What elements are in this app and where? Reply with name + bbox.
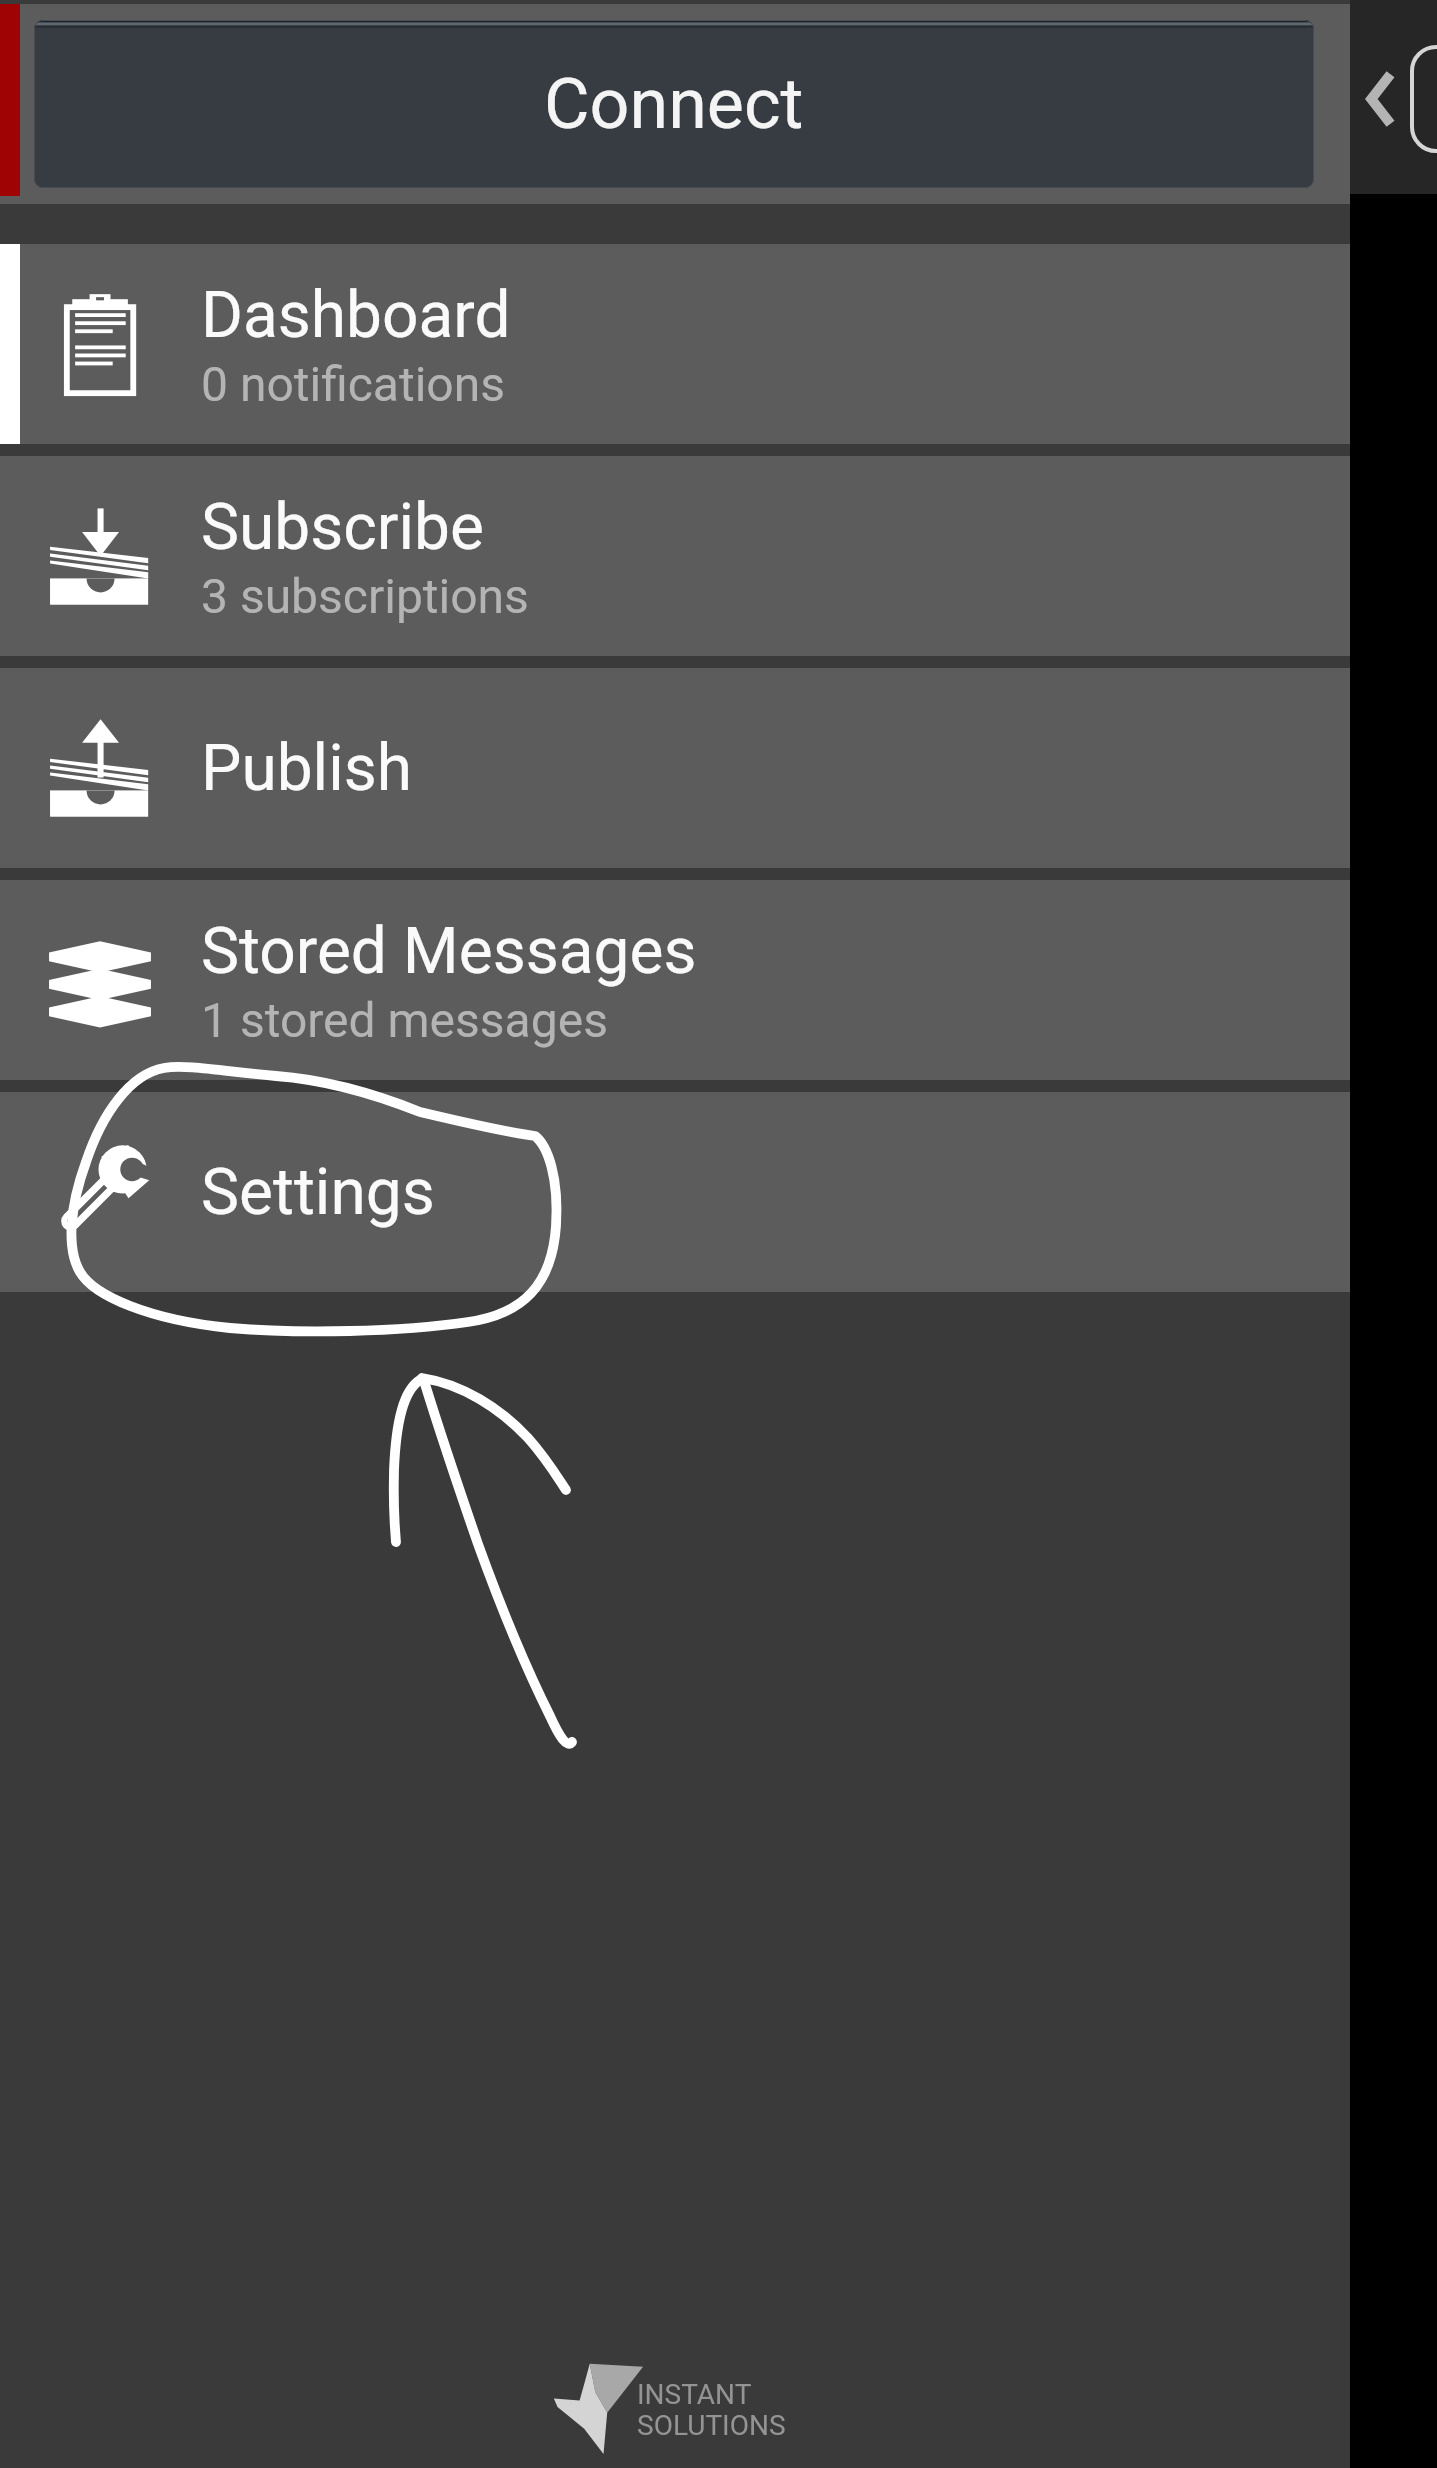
button[interactable]: Back bbox=[1363, 68, 1395, 130]
staticText: Dashboard bbox=[201, 278, 511, 353]
staticText: SOLUTIONS bbox=[637, 2409, 786, 2442]
staticText: 3 subscriptions bbox=[201, 568, 529, 624]
button[interactable]: Dashboard bbox=[0, 244, 1350, 444]
staticText: Stored Messages bbox=[201, 914, 697, 989]
staticText: Subscribe bbox=[201, 490, 484, 565]
button[interactable]: Settings bbox=[0, 1092, 1350, 1292]
button[interactable]: Stored Messages bbox=[0, 880, 1350, 1080]
staticText: Settings bbox=[201, 1155, 435, 1230]
button[interactable]: Subscribe bbox=[0, 456, 1350, 656]
staticText: 1 stored messages bbox=[201, 992, 608, 1048]
button[interactable]: App bbox=[1409, 44, 1437, 154]
staticText: Connect bbox=[544, 63, 804, 145]
staticText: INSTANT bbox=[637, 2378, 752, 2411]
staticText: Publish bbox=[201, 731, 412, 806]
staticText: 0 notifications bbox=[201, 356, 506, 412]
button[interactable]: Connect bbox=[34, 20, 1314, 188]
button[interactable]: Publish bbox=[0, 668, 1350, 868]
